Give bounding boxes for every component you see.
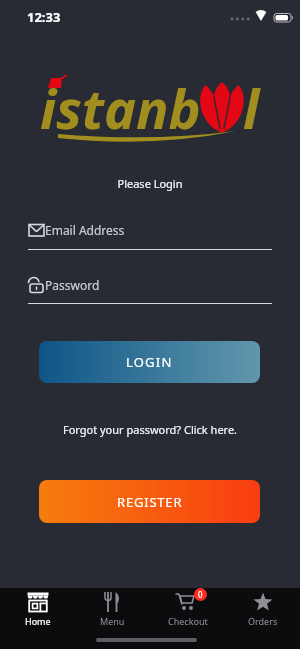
staticText: 0	[198, 589, 203, 600]
staticText: Orders	[248, 615, 278, 627]
button[interactable]: REGISTER	[39, 480, 260, 523]
button[interactable]: LOGIN	[39, 341, 260, 383]
button[interactable]: Menu	[75, 591, 150, 628]
staticText: Password	[45, 277, 100, 293]
button[interactable]: Home	[0, 591, 75, 628]
button[interactable]: Orders	[225, 591, 300, 628]
staticText: Home	[25, 615, 51, 627]
staticText: Email Address	[45, 222, 125, 238]
staticText: 12:33	[27, 8, 61, 26]
button[interactable]: Checkout	[150, 591, 225, 628]
staticText: l	[243, 71, 260, 145]
staticText: Forgot your password? Click here.	[0, 422, 300, 437]
staticText: Checkout	[168, 615, 208, 627]
button[interactable]: Forgot your password? Click here.	[0, 422, 300, 442]
staticText: LOGIN	[126, 353, 173, 371]
staticText: Menu	[100, 615, 125, 627]
staticText: Please Login	[0, 176, 300, 191]
staticText: REGISTER	[117, 493, 183, 511]
button[interactable]: Password	[28, 277, 272, 304]
button[interactable]: Email Address	[28, 222, 272, 250]
staticText: istanb	[40, 71, 201, 145]
